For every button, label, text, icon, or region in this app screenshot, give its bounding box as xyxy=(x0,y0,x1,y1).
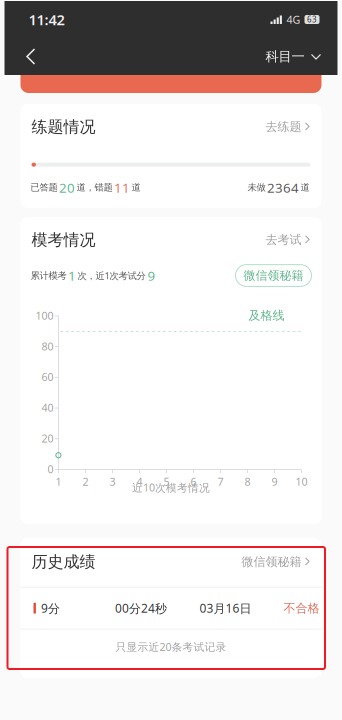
staticText: 40 xyxy=(41,401,53,415)
staticText: 80 xyxy=(41,339,53,353)
staticText: 练题情况 xyxy=(31,117,95,137)
staticText: 1 xyxy=(68,267,76,284)
staticText: 8 xyxy=(244,474,250,489)
staticText: 0 xyxy=(47,462,53,476)
staticText: 不合格 xyxy=(283,601,319,615)
staticText: 模考情况 xyxy=(31,230,95,250)
staticText: 道，错题 xyxy=(76,182,112,193)
staticText: 未做 xyxy=(247,182,265,193)
staticText: 去考试 xyxy=(265,232,301,247)
button[interactable]: Back xyxy=(12,38,48,75)
staticText: 只显示近20条考试记录 xyxy=(115,640,226,654)
staticText: 及格线 xyxy=(248,308,284,323)
staticText: 去练题 xyxy=(265,119,301,134)
staticText: 道 xyxy=(131,182,140,193)
staticText: 科目一 xyxy=(265,48,304,65)
staticText: 9分 xyxy=(41,600,60,616)
staticText: 20 xyxy=(41,431,53,445)
staticText: 次，近1次考试分 xyxy=(77,269,145,282)
staticText: 11 xyxy=(114,179,130,196)
button[interactable]: 微信领秘籍 xyxy=(235,265,311,286)
staticText: 5 xyxy=(163,474,169,489)
staticText: 微信领秘籍 xyxy=(243,268,303,283)
staticText: 11:42 xyxy=(28,10,64,29)
staticText: 100 xyxy=(35,308,53,323)
staticText: 9 xyxy=(271,474,277,489)
staticText: 道 xyxy=(300,182,309,193)
button[interactable]: 科目一 xyxy=(261,38,325,75)
button[interactable]: 去考试 xyxy=(265,232,310,247)
staticText: 6 xyxy=(190,474,196,489)
staticText: 近10次模考情况 xyxy=(132,480,210,495)
button[interactable]: 微信领秘籍 xyxy=(241,554,310,569)
staticText: 已答题 xyxy=(30,182,57,193)
staticText: 微信领秘籍 xyxy=(241,554,301,569)
staticText: 历史成绩 xyxy=(31,552,95,572)
button[interactable]: 去练题 xyxy=(265,119,310,134)
staticText: 2364 xyxy=(267,179,299,196)
staticText: 9 xyxy=(147,267,155,284)
staticText: 4 xyxy=(136,474,142,489)
staticText: 60 xyxy=(41,370,53,384)
staticText: 2 xyxy=(82,474,88,489)
staticText: 累计模考 xyxy=(30,270,66,281)
staticText: 10 xyxy=(295,474,307,489)
staticText: 63 xyxy=(307,14,317,25)
button[interactable]: 9分 xyxy=(20,588,321,629)
staticText: 3 xyxy=(109,474,115,489)
staticText: 4G xyxy=(286,12,300,27)
staticText: 20 xyxy=(59,179,75,196)
staticText: 7 xyxy=(217,474,223,489)
staticText: 1 xyxy=(55,474,61,489)
staticText: 03月16日 xyxy=(199,600,251,616)
staticText: 00分24秒 xyxy=(115,600,167,616)
